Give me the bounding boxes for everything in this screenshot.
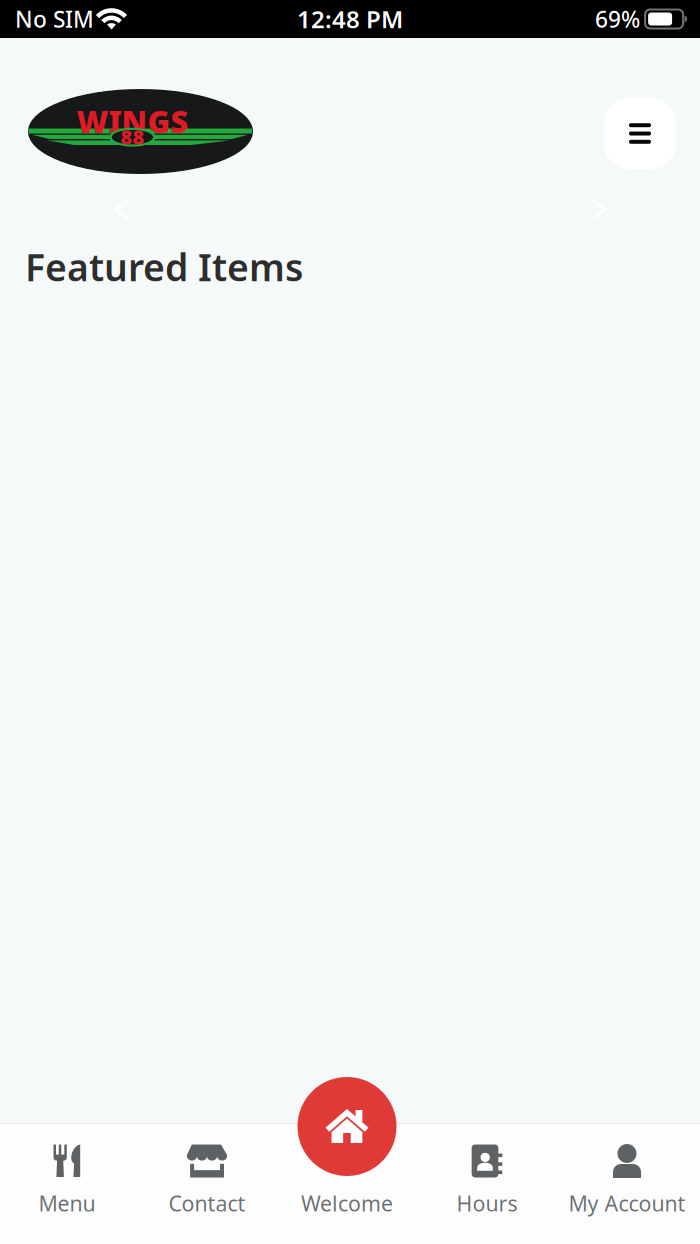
staticText: Contact [168,1189,245,1217]
staticText: My Account [568,1189,685,1217]
staticText: Welcome [301,1189,393,1217]
staticText: Featured Items [25,242,303,292]
staticText: 69% [595,4,640,34]
staticText: Menu [38,1189,95,1217]
staticText: Hours [456,1189,517,1217]
button[interactable]: Menu [604,98,676,169]
button[interactable]: Welcome [297,1077,396,1176]
staticText: 12:48 PM [297,3,403,35]
staticText: No SIM [15,4,94,34]
staticText: 88 [120,123,144,150]
button[interactable]: My Account [557,1124,697,1244]
button[interactable]: Hours [417,1124,557,1244]
button[interactable]: Menu [0,1124,137,1244]
staticText: WINGS [76,101,188,141]
button[interactable]: Contact [137,1124,277,1244]
button[interactable]: Welcome [277,1124,417,1244]
